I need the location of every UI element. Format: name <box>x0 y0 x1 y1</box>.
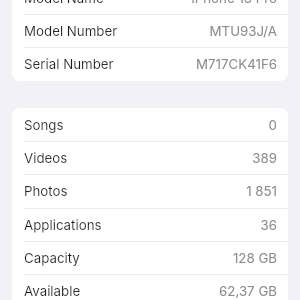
staticText: MTU93J/A <box>209 23 277 39</box>
button[interactable]: Videos <box>12 141 288 174</box>
button[interactable]: Applications <box>12 208 288 241</box>
staticText: Model Name <box>24 0 104 6</box>
staticText: Applications <box>24 217 102 233</box>
staticText: Videos <box>24 150 68 166</box>
staticText: Capacity <box>24 250 80 266</box>
staticText: Available <box>24 283 81 299</box>
button[interactable]: Model Number <box>12 14 288 47</box>
staticText: Songs <box>24 117 64 133</box>
staticText: 128 GB <box>232 250 277 266</box>
staticText: iPhone 13 Pro <box>191 0 277 6</box>
button[interactable]: Serial Number <box>12 47 288 81</box>
button[interactable]: Capacity <box>12 241 288 274</box>
button[interactable]: Available <box>12 274 288 300</box>
button[interactable]: Photos <box>12 174 288 208</box>
staticText: Photos <box>24 183 68 199</box>
button[interactable]: Songs <box>12 108 288 141</box>
staticText: 1 851 <box>246 183 277 199</box>
staticText: M717CK41F6 <box>196 56 277 72</box>
staticText: 36 <box>260 217 277 233</box>
staticText: 389 <box>252 150 277 166</box>
staticText: 62,37 GB <box>219 283 277 299</box>
staticText: Serial Number <box>24 56 114 72</box>
staticText: 0 <box>268 117 277 133</box>
button[interactable]: Model Name <box>12 0 288 14</box>
staticText: Model Number <box>24 23 118 39</box>
